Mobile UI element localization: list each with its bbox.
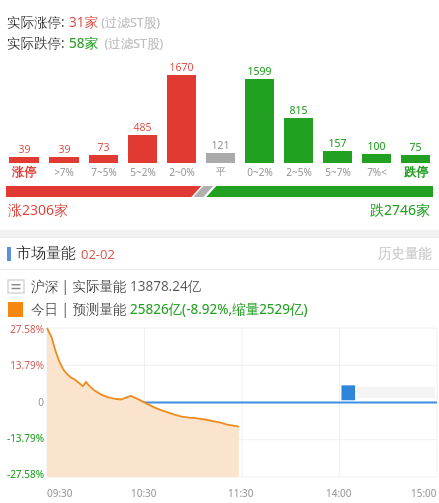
staticText: 157: [328, 136, 347, 150]
staticText: 平: [216, 165, 226, 178]
staticText: 15:00: [411, 486, 437, 500]
staticText: 涨2306家: [8, 200, 69, 219]
staticText: 实际跌停:: [7, 34, 69, 52]
staticText: >7%: [54, 165, 74, 179]
button[interactable]: 100: [357, 60, 396, 180]
staticText: 815: [289, 103, 308, 117]
button[interactable]: 75: [396, 60, 435, 180]
staticText: 历史量能: [378, 245, 432, 262]
staticText: 今日 | 预测量能: [31, 300, 130, 318]
staticText: 485: [133, 120, 152, 134]
button[interactable]: 815: [279, 60, 318, 180]
staticText: 跌停: [404, 164, 428, 179]
staticText: 7%<: [367, 165, 387, 179]
staticText: 10:30: [131, 486, 157, 500]
staticText: 市场量能: [16, 244, 76, 263]
staticText: 0~2%: [247, 165, 273, 179]
button[interactable]: 1670: [162, 60, 201, 180]
staticText: 14:00: [326, 486, 352, 500]
staticText: 1599: [247, 64, 272, 78]
staticText: 13878.24亿: [130, 277, 202, 295]
button[interactable]: [6, 186, 433, 197]
staticText: 11:30: [228, 486, 254, 500]
staticText: 13.79%: [10, 358, 44, 372]
staticText: 2~0%: [169, 165, 195, 179]
staticText: (过滤ST股): [98, 14, 161, 31]
staticText: 跌2746家: [370, 200, 431, 219]
button[interactable]: 1599: [240, 60, 279, 180]
button[interactable]: 市场量能: [0, 238, 439, 269]
staticText: 7~5%: [91, 165, 117, 179]
button[interactable]: 39: [4, 60, 44, 180]
staticText: 实际涨停:: [7, 13, 69, 31]
button[interactable]: 157: [318, 60, 357, 180]
staticText: -27.58%: [6, 467, 44, 481]
staticText: 100: [367, 139, 386, 153]
staticText: 09:30: [47, 486, 73, 500]
staticText: 27.58%: [10, 322, 44, 336]
staticText: 1670: [169, 60, 194, 74]
staticText: 5~2%: [130, 165, 156, 179]
staticText: 75: [409, 140, 422, 154]
button[interactable]: 121: [201, 60, 240, 180]
button[interactable]: 73: [84, 60, 123, 180]
staticText: 02-02: [81, 245, 115, 263]
staticText: 5~7%: [325, 165, 351, 179]
staticText: 39: [58, 142, 71, 156]
staticText: 0: [38, 395, 44, 409]
staticText: 73: [97, 140, 110, 154]
button[interactable]: 39: [44, 60, 84, 180]
staticText: 2~5%: [286, 165, 312, 179]
staticText: 沪深 | 实际量能: [31, 277, 130, 295]
staticText: 121: [211, 138, 230, 152]
staticText: -13.79%: [6, 431, 44, 445]
staticText: 58家: [69, 34, 98, 52]
staticText: (过滤ST股): [98, 35, 164, 52]
staticText: 39: [18, 142, 31, 156]
button[interactable]: 485: [123, 60, 162, 180]
staticText: 涨停: [12, 164, 36, 179]
staticText: 25826亿(-8.92%,缩量2529亿): [130, 300, 308, 318]
staticText: 31家: [69, 13, 98, 31]
